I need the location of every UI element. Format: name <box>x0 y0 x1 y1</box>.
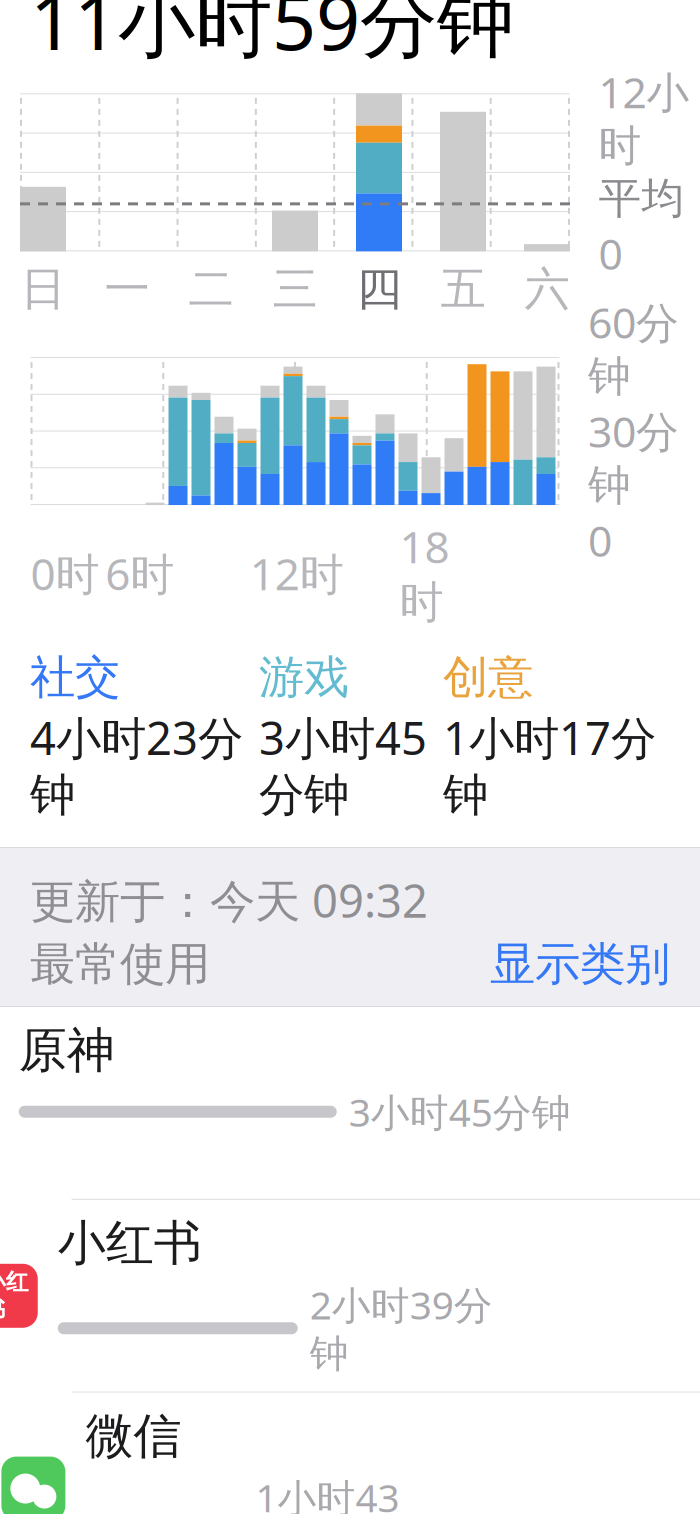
button[interactable]: 微信 <box>0 1393 700 1514</box>
button[interactable]: 显示类别 <box>490 936 670 992</box>
staticText: 三 <box>272 261 317 317</box>
staticText: 11小时59分钟 <box>30 0 514 71</box>
staticText: 日 <box>20 261 65 317</box>
staticText: 18时 <box>399 517 449 629</box>
staticText: 小红书 <box>0 1268 29 1324</box>
staticText: 原神 <box>19 1021 115 1080</box>
staticText: 0时 <box>30 544 99 602</box>
staticText: 最常使用 <box>30 936 210 992</box>
staticText: 2小时39分钟 <box>310 1279 493 1378</box>
staticText: 4小时23分钟 <box>30 707 243 823</box>
staticText: 0 <box>588 512 612 568</box>
staticText: 一 <box>104 261 149 317</box>
staticText: 六 <box>524 261 569 317</box>
staticText: 30分钟 <box>588 403 679 512</box>
staticText: 平均 <box>598 172 684 225</box>
staticText: 二 <box>188 261 233 317</box>
button[interactable]: 原神 <box>0 1007 700 1200</box>
button[interactable]: 小红书 <box>0 1200 700 1393</box>
staticText: 四 <box>356 261 401 317</box>
staticText: 显示类别 <box>490 936 670 992</box>
staticText: 0 <box>598 225 622 281</box>
staticText: 6时 <box>105 544 174 602</box>
staticText: 12时 <box>250 544 344 602</box>
staticText: 3小时45分钟 <box>259 707 427 823</box>
staticText: 更新于：今天 09:32 <box>30 870 428 930</box>
staticText: 1小时17分钟 <box>443 707 656 823</box>
staticText: 60分钟 <box>588 294 679 403</box>
staticText: 小红书 <box>58 1214 202 1273</box>
staticText: 游戏 <box>259 649 349 705</box>
staticText: 微信 <box>85 1407 181 1466</box>
staticText: 创意 <box>443 649 533 705</box>
staticText: 五 <box>440 261 485 317</box>
staticText: 1小时43分钟 <box>255 1472 399 1514</box>
staticText: 12小时 <box>598 63 689 172</box>
staticText: 3小时45分钟 <box>349 1086 571 1137</box>
staticText: 社交 <box>30 649 120 705</box>
